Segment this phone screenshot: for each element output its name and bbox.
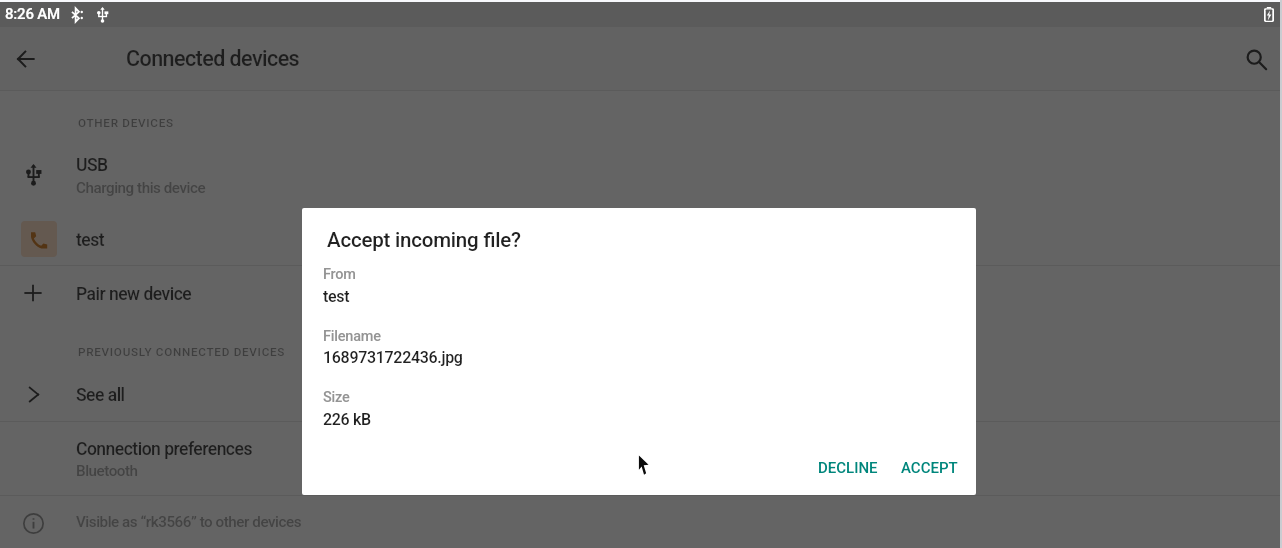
button[interactable] (0, 370, 1282, 421)
button[interactable] (0, 98, 1282, 165)
button[interactable] (0, 496, 1282, 548)
staticText: OTHER DEVICES (78, 116, 174, 130)
staticText: 1689731722436.jpg (323, 348, 463, 367)
button[interactable] (0, 266, 1282, 320)
staticText: Pair new device (76, 284, 192, 305)
button[interactable]: ACCEPT (895, 448, 963, 488)
staticText: USB (76, 155, 108, 176)
staticText: Connected devices (126, 46, 300, 71)
staticText: Visible as “rk3566” to other devices (76, 513, 302, 531)
staticText: From (323, 266, 356, 283)
staticText: Accept incoming file? (327, 228, 521, 252)
staticText: test (323, 287, 350, 306)
staticText: Filename (323, 328, 381, 345)
staticText: See all (76, 385, 125, 406)
staticText: 226 kB (323, 410, 371, 429)
staticText: Connection preferences (76, 439, 252, 460)
staticText: test (76, 230, 105, 251)
staticText: 8:26 AM (5, 5, 60, 23)
button[interactable]: Search (1232, 35, 1280, 83)
button[interactable] (0, 422, 1282, 495)
button[interactable]: DECLINE (812, 448, 884, 488)
button[interactable]: Back (2, 35, 50, 83)
staticText: Bluetooth (76, 462, 138, 480)
staticText: Charging this device (76, 179, 206, 197)
staticText: Size (323, 389, 350, 406)
staticText: DECLINE (818, 459, 878, 477)
button[interactable] (0, 213, 1282, 265)
staticText: ACCEPT (901, 459, 958, 477)
staticText: PREVIOUSLY CONNECTED DEVICES (78, 345, 286, 359)
